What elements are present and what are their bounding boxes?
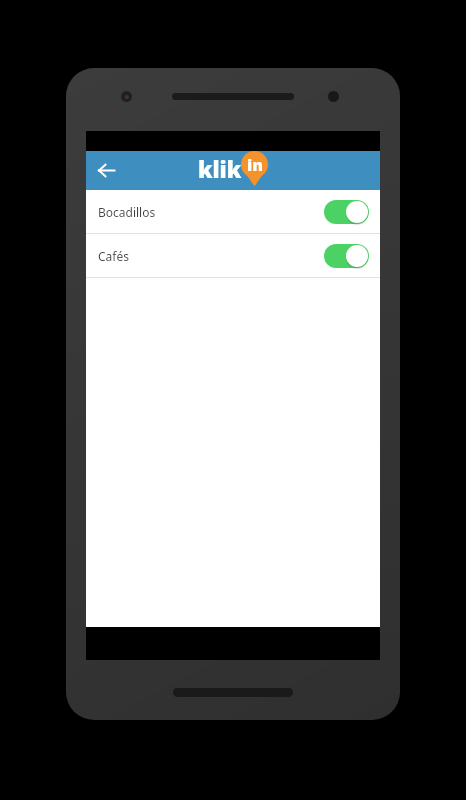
button[interactable]: Toggle Bocadillos bbox=[324, 199, 369, 225]
button[interactable]: Toggle Cafés bbox=[324, 243, 369, 269]
button[interactable]: Cafés bbox=[86, 234, 380, 277]
button[interactable]: Back bbox=[86, 151, 126, 190]
staticText: Bocadillos bbox=[98, 204, 324, 220]
staticText: klik bbox=[198, 154, 242, 184]
staticText: Cafés bbox=[98, 248, 324, 264]
staticText: in bbox=[247, 154, 263, 176]
button[interactable]: Bocadillos bbox=[86, 190, 380, 233]
